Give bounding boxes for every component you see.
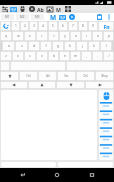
button[interactable]: Clipboard [95, 13, 104, 21]
button[interactable]: 6 [58, 21, 68, 31]
button[interactable]: Keyboard [9, 5, 18, 13]
button[interactable] [66, 61, 114, 71]
button[interactable]: x [12, 51, 24, 61]
button[interactable] [0, 21, 11, 31]
button[interactable] [0, 71, 19, 81]
button[interactable]: k [88, 41, 100, 51]
button[interactable]: r [36, 31, 48, 41]
button[interactable]: d [28, 41, 40, 51]
staticText: 6 [62, 24, 64, 28]
button[interactable]: More options [104, 13, 113, 21]
button[interactable]: p [103, 31, 114, 41]
button[interactable]: Media [27, 5, 36, 13]
button[interactable]: / [103, 51, 114, 61]
button[interactable]: g [52, 41, 64, 51]
staticText: w [17, 34, 20, 38]
button[interactable]: 3 [29, 21, 38, 31]
button[interactable]: l [100, 41, 112, 51]
button[interactable]: M3 [31, 14, 44, 20]
button[interactable]: M [54, 5, 63, 13]
button[interactable]: Ab [36, 5, 45, 13]
button[interactable]: Del [76, 71, 95, 81]
button[interactable]: 2 [20, 21, 29, 31]
button[interactable]: Home [45, 168, 69, 182]
staticText: Ctrl [26, 74, 31, 78]
staticText: t [53, 34, 55, 38]
button[interactable]: 1 [11, 21, 20, 31]
button[interactable]: y [59, 31, 70, 41]
button[interactable]: Fn [98, 21, 114, 31]
button[interactable]: Ctrl [19, 71, 38, 81]
button[interactable]: h [64, 41, 76, 51]
staticText: M [56, 6, 61, 13]
button[interactable]: Mouse [18, 5, 27, 13]
button[interactable]: v [36, 51, 48, 61]
button[interactable]: M2 [16, 14, 29, 20]
button[interactable] [0, 81, 28, 89]
button[interactable]: q [0, 31, 12, 41]
button[interactable] [28, 81, 56, 89]
staticText: x [17, 54, 19, 58]
button[interactable] [85, 81, 114, 89]
button[interactable]: s [15, 41, 28, 51]
button[interactable]: Remote [67, 13, 76, 21]
button[interactable]: Back [11, 168, 35, 182]
button[interactable]: 8 [78, 21, 88, 31]
button[interactable]: n [59, 51, 70, 61]
staticText: c [29, 54, 31, 58]
button[interactable]: M1 [1, 14, 14, 20]
staticText: z [5, 54, 7, 58]
button[interactable]: Scroll [99, 90, 113, 160]
button[interactable]: 5 [48, 21, 58, 31]
staticText: v [41, 54, 43, 58]
staticText: 9 [92, 24, 94, 28]
staticText: k [93, 44, 95, 48]
staticText: u [75, 34, 77, 38]
staticText: q [5, 34, 7, 38]
button[interactable]: . [92, 51, 103, 61]
button[interactable]: 7 [68, 21, 78, 31]
button[interactable]: b [48, 51, 59, 61]
staticText: M2 [20, 15, 25, 19]
button[interactable]: Keyboard toggle [58, 13, 67, 21]
button[interactable]: , [81, 51, 92, 61]
button[interactable] [56, 81, 85, 89]
staticText: Fn [103, 23, 110, 30]
button[interactable] [0, 61, 10, 71]
button[interactable]: j [76, 41, 88, 51]
staticText: d [33, 44, 35, 48]
staticText: 3 [33, 24, 35, 28]
staticText: M1 [5, 15, 10, 19]
button[interactable]: z [0, 51, 12, 61]
button[interactable]: m [70, 51, 81, 61]
button[interactable]: Bksp [95, 71, 114, 81]
staticText: i [86, 34, 87, 38]
staticText: 2 [24, 24, 26, 28]
button[interactable]: w [12, 31, 24, 41]
button[interactable]: t [48, 31, 59, 41]
button[interactable]: Recent apps [80, 168, 104, 182]
button[interactable]: f [40, 41, 52, 51]
button[interactable]: 9 [88, 21, 98, 31]
staticText: 5 [52, 24, 54, 28]
button[interactable]: M [48, 13, 58, 21]
button[interactable]: Alt [38, 71, 57, 81]
button[interactable]: o [92, 31, 103, 41]
button[interactable]: 4 [38, 21, 48, 31]
button[interactable] [10, 61, 66, 71]
button[interactable]: i [81, 31, 92, 41]
button[interactable]: Esc [57, 71, 76, 81]
button[interactable]: u [70, 31, 81, 41]
button[interactable]: Apps [63, 5, 72, 13]
button[interactable]: Settings [0, 5, 9, 13]
button[interactable]: Images [45, 5, 54, 13]
staticText: . [97, 54, 98, 58]
button[interactable]: e [24, 31, 36, 41]
staticText: s [21, 44, 23, 48]
button[interactable]: c [24, 51, 36, 61]
staticText: M [50, 13, 57, 21]
button[interactable]: a [2, 41, 15, 51]
